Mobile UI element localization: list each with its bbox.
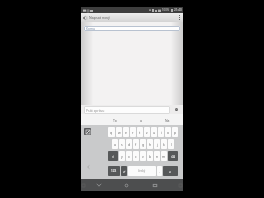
staticText: ✐ [123, 170, 126, 173]
staticText: y [121, 154, 123, 159]
button[interactable]: i [158, 127, 164, 137]
button[interactable]: l [168, 139, 174, 149]
button[interactable]: Home [122, 179, 131, 191]
staticText: g [142, 142, 145, 147]
staticText: Komu [86, 27, 95, 31]
button[interactable]: u [151, 127, 157, 137]
button[interactable]: e [123, 127, 129, 137]
staticText: 123 [111, 169, 117, 173]
staticText: Psát zprávu [86, 108, 105, 113]
button[interactable]: w [116, 127, 122, 137]
button[interactable]: Backspace [168, 151, 178, 161]
button[interactable]: 123 [108, 166, 120, 176]
button[interactable]: Enter [163, 166, 178, 176]
staticText: z [146, 130, 148, 135]
staticText: o [167, 130, 170, 135]
button[interactable]: Komu [84, 26, 180, 31]
button[interactable]: n [154, 151, 160, 161]
staticText: w [118, 130, 121, 135]
button[interactable]: a [112, 139, 118, 149]
staticText: a [140, 118, 142, 123]
staticText: . [159, 169, 160, 174]
button[interactable]: s [119, 139, 125, 149]
button[interactable]: More options [176, 13, 183, 22]
staticText: ↵ [169, 170, 172, 173]
button[interactable]: k [161, 139, 167, 149]
staticText: i [161, 130, 162, 135]
button[interactable]: g [140, 139, 146, 149]
staticText: 21:40 [174, 8, 182, 12]
button[interactable]: v [140, 151, 146, 161]
button[interactable]: x [126, 151, 132, 161]
button[interactable]: . [157, 166, 162, 176]
staticText: x [128, 154, 130, 159]
button[interactable]: d [126, 139, 132, 149]
staticText: To [113, 118, 117, 123]
button[interactable]: Recents [150, 179, 159, 191]
staticText: k [163, 142, 165, 147]
button[interactable]: Move keyboard [85, 164, 91, 170]
staticText: t [139, 130, 141, 135]
staticText: Napsat nový [89, 15, 110, 20]
staticText: f [135, 142, 137, 147]
button[interactable]: český [128, 166, 156, 176]
button[interactable]: y [119, 151, 125, 161]
staticText: j [157, 142, 158, 147]
staticText: c [135, 154, 137, 159]
button[interactable]: f [133, 139, 139, 149]
staticText: q [110, 130, 113, 135]
staticText: v [142, 154, 144, 159]
staticText: ⌫ [171, 155, 176, 158]
staticText: ⇧ [112, 155, 115, 158]
button[interactable]: c [133, 151, 139, 161]
staticText: Na [165, 118, 170, 123]
staticText: p [174, 130, 177, 135]
button[interactable]: Na [154, 116, 180, 125]
staticText: n [156, 154, 159, 159]
staticText: s [121, 142, 123, 147]
button[interactable]: j [154, 139, 160, 149]
staticText: r [132, 130, 134, 135]
staticText: m [162, 154, 166, 159]
staticText: a [114, 142, 116, 147]
button[interactable]: Hide keyboard [94, 179, 103, 191]
button[interactable]: m [161, 151, 167, 161]
button[interactable]: o [165, 127, 171, 137]
button[interactable]: Insert emoticon [174, 105, 179, 114]
button[interactable]: Shift [108, 151, 118, 161]
staticText: b [149, 154, 152, 159]
staticText: h [149, 142, 152, 147]
button[interactable]: Handwriting [121, 166, 127, 176]
staticText: d [128, 142, 131, 147]
button[interactable]: p [172, 127, 178, 137]
button[interactable]: Back [81, 13, 89, 22]
button[interactable]: q [108, 127, 115, 137]
staticText: český [138, 169, 146, 173]
staticText: u [153, 130, 156, 135]
button[interactable]: Emoji [84, 128, 91, 135]
button[interactable]: a [128, 116, 154, 125]
staticText: l [171, 142, 172, 147]
staticText: 100% [162, 8, 170, 12]
button[interactable]: z [144, 127, 150, 137]
button[interactable]: h [147, 139, 153, 149]
button[interactable]: To [102, 116, 128, 125]
button[interactable]: r [130, 127, 136, 137]
button[interactable]: t [137, 127, 143, 137]
button[interactable]: Psát zprávu [84, 106, 170, 114]
staticText: e [125, 130, 127, 135]
button[interactable]: b [147, 151, 153, 161]
